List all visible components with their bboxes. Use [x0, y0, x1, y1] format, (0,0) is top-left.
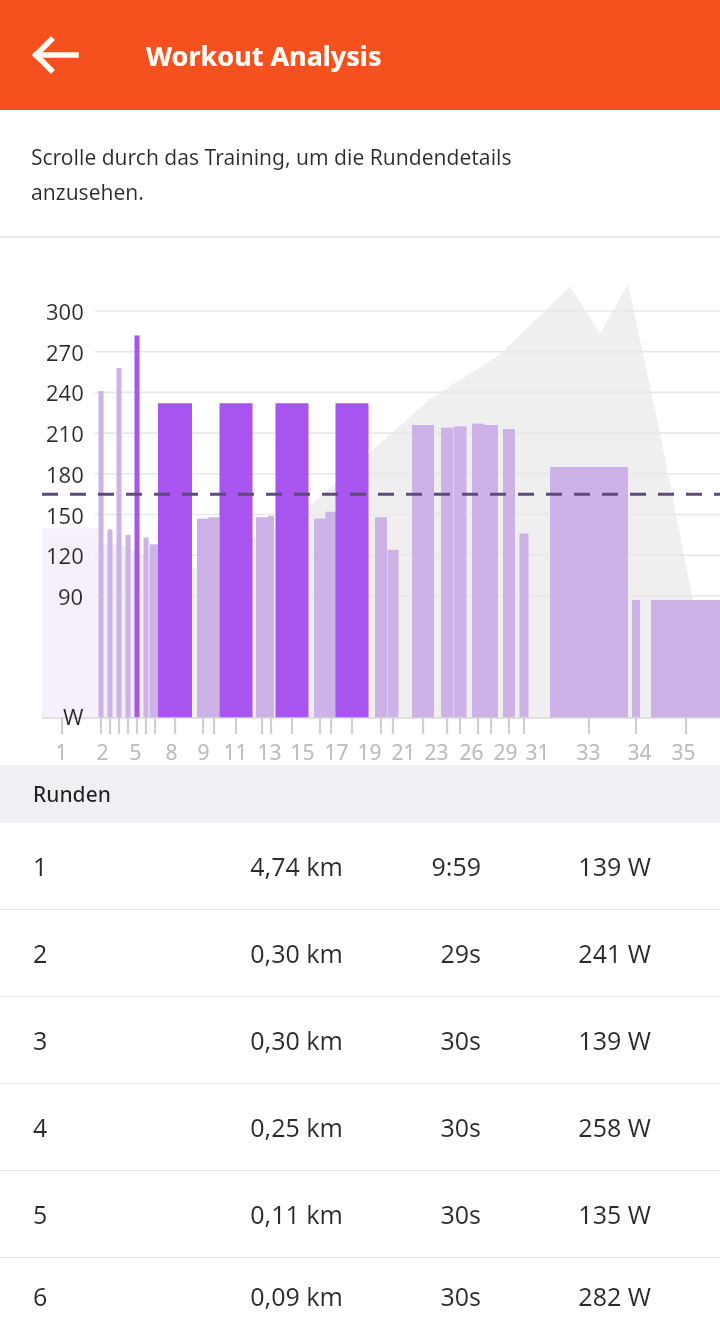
staticText: 9:59 [371, 849, 481, 883]
staticText: 2 [33, 936, 163, 970]
staticText: 30s [371, 1023, 481, 1057]
staticText: 0,09 km [163, 1279, 343, 1313]
staticText: 139 W [511, 1023, 651, 1057]
staticText: Scrolle durch das Training, um die Runde… [31, 143, 512, 207]
staticText: 241 W [511, 936, 651, 970]
button[interactable]: 6 [0, 1258, 720, 1334]
staticText: 30s [371, 1279, 481, 1313]
staticText: 139 W [511, 849, 651, 883]
staticText: 1 [33, 849, 163, 883]
staticText: 3 [33, 1023, 163, 1057]
button[interactable]: Back [20, 19, 92, 91]
staticText: 4,74 km [163, 849, 343, 883]
staticText: Runden [33, 780, 111, 809]
staticText: 282 W [511, 1279, 651, 1313]
staticText: 30s [371, 1197, 481, 1231]
button[interactable]: 2 [0, 910, 720, 996]
staticText: 4 [33, 1110, 163, 1144]
staticText: 6 [33, 1279, 163, 1313]
staticText: 0,25 km [163, 1110, 343, 1144]
button[interactable]: 4 [0, 1084, 720, 1170]
button[interactable]: 3 [0, 997, 720, 1083]
staticText: 0,11 km [163, 1197, 343, 1231]
staticText: 135 W [511, 1197, 651, 1231]
staticText: 258 W [511, 1110, 651, 1144]
staticText: 5 [33, 1197, 163, 1231]
staticText: 0,30 km [163, 1023, 343, 1057]
staticText: 29s [371, 936, 481, 970]
button[interactable]: 5 [0, 1171, 720, 1257]
staticText: Workout Analysis [146, 37, 382, 74]
staticText: 30s [371, 1110, 481, 1144]
button[interactable]: 1 [0, 823, 720, 909]
staticText: 0,30 km [163, 936, 343, 970]
